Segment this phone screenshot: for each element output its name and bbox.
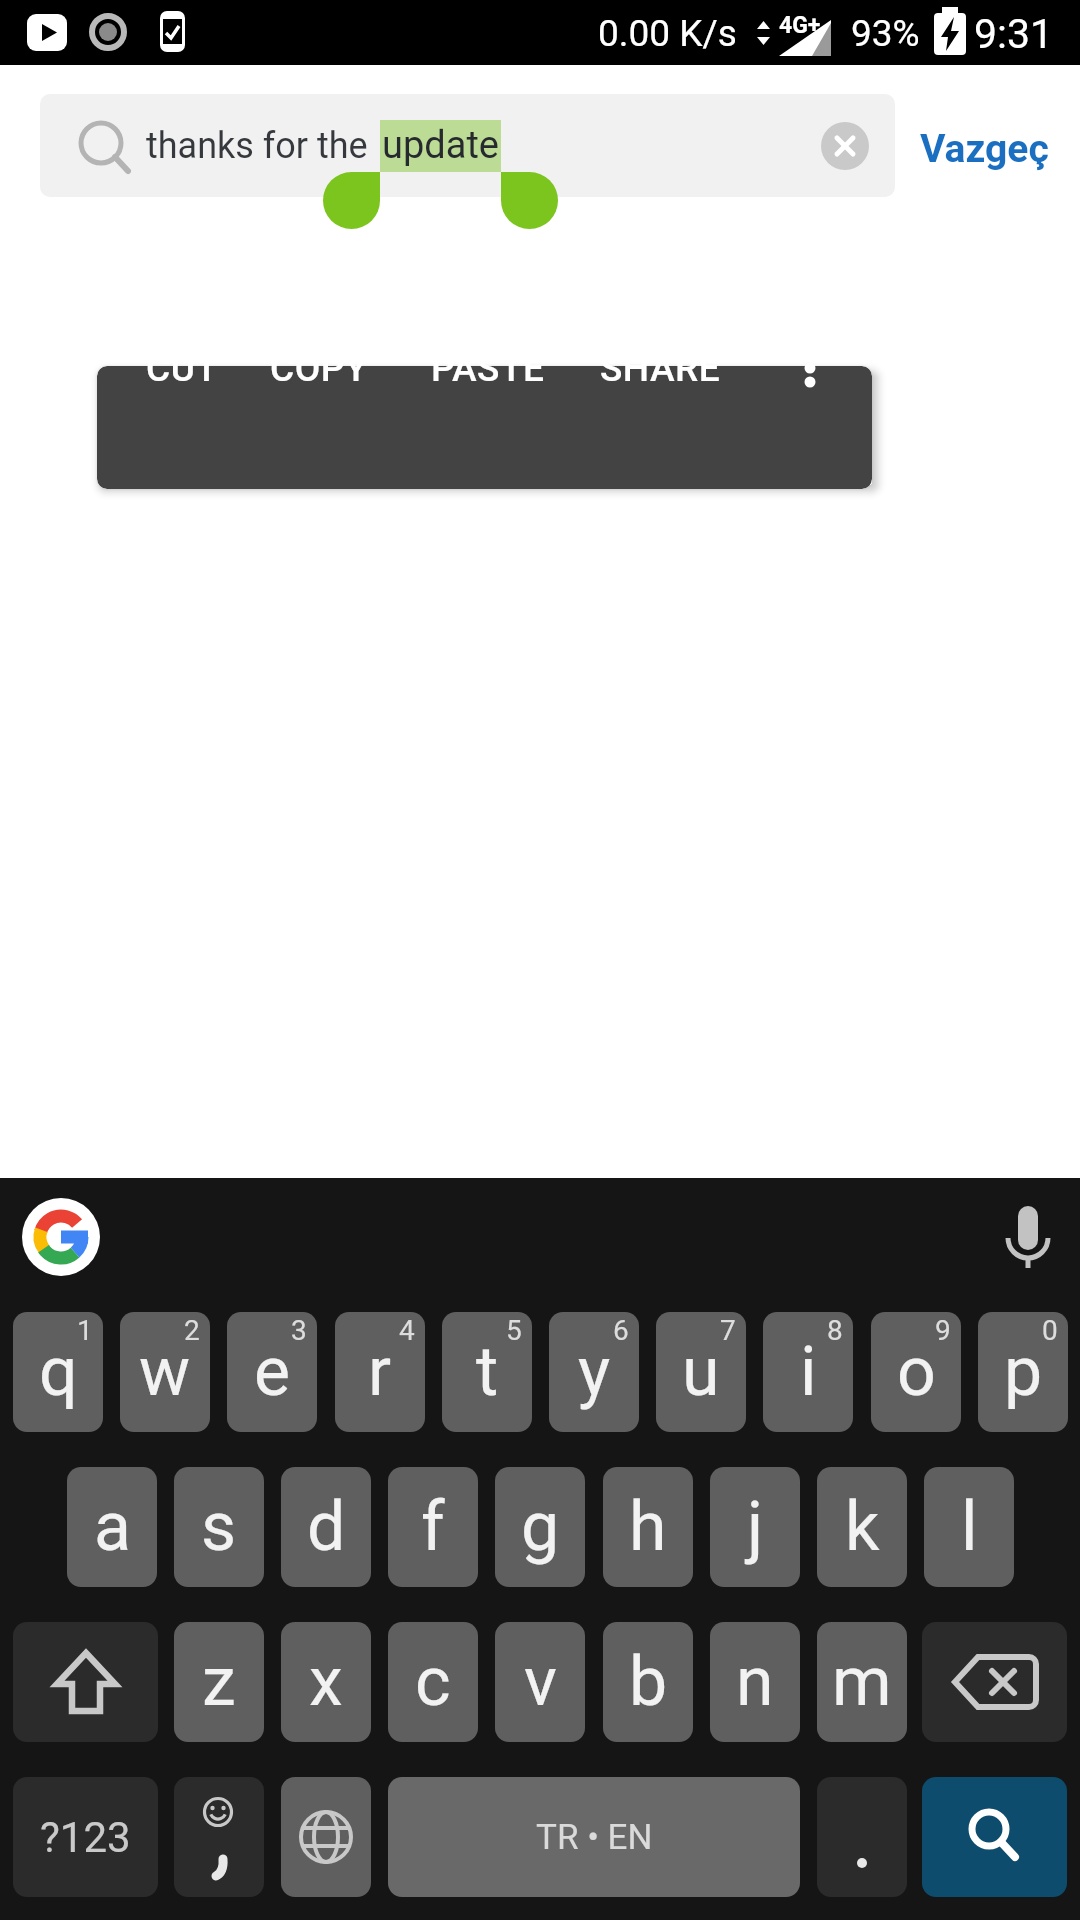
button[interactable]: e xyxy=(227,1312,317,1432)
staticText: 6 xyxy=(613,1314,629,1347)
staticText: thanks for the xyxy=(146,125,368,167)
staticText: v xyxy=(524,1642,557,1722)
button[interactable]: TR • EN xyxy=(388,1777,800,1897)
staticText: p xyxy=(1004,1332,1043,1412)
staticText: e xyxy=(254,1332,291,1412)
staticText: COPY xyxy=(270,347,368,390)
staticText: ?123 xyxy=(40,1813,131,1862)
staticText: y xyxy=(578,1332,611,1412)
staticText: 4 xyxy=(399,1314,415,1347)
staticText: update xyxy=(382,123,499,168)
staticText: g xyxy=(521,1487,560,1567)
staticText: r xyxy=(368,1332,392,1412)
staticText: 0.00 K/s xyxy=(598,12,737,55)
button[interactable] xyxy=(40,94,895,197)
button[interactable] xyxy=(922,1622,1067,1742)
staticText: j xyxy=(747,1487,764,1567)
button[interactable]: l xyxy=(924,1467,1014,1587)
button[interactable]: m xyxy=(817,1622,907,1742)
button[interactable]: x xyxy=(281,1622,371,1742)
button[interactable]: r xyxy=(335,1312,425,1432)
staticText: 8 xyxy=(827,1314,843,1347)
staticText: CUT xyxy=(146,347,219,390)
button[interactable]: j xyxy=(710,1467,800,1587)
button[interactable]: c xyxy=(388,1622,478,1742)
staticText: SHARE xyxy=(600,347,721,390)
button[interactable]: v xyxy=(495,1622,585,1742)
staticText: 7 xyxy=(720,1314,736,1347)
button[interactable]: q xyxy=(13,1312,103,1432)
button[interactable]: n xyxy=(710,1622,800,1742)
button[interactable]: h xyxy=(603,1467,693,1587)
staticText: d xyxy=(307,1487,346,1567)
button[interactable]: SHARE xyxy=(600,347,721,390)
staticText: o xyxy=(897,1332,936,1412)
button[interactable]: z xyxy=(174,1622,264,1742)
button[interactable]: CUT xyxy=(146,347,219,390)
staticText: 5 xyxy=(506,1314,522,1347)
button[interactable]: PASTE xyxy=(431,347,545,390)
staticText: h xyxy=(629,1487,667,1567)
staticText: Vazgeç xyxy=(920,126,1049,172)
staticText: PASTE xyxy=(431,347,545,390)
staticText: b xyxy=(629,1642,668,1722)
button[interactable]: b xyxy=(603,1622,693,1742)
button[interactable]: ?123 xyxy=(13,1777,158,1897)
staticText: s xyxy=(201,1487,237,1567)
staticText: q xyxy=(39,1332,78,1412)
button[interactable] xyxy=(922,1777,1067,1897)
staticText: 0 xyxy=(1042,1314,1058,1347)
staticText: 1 xyxy=(77,1314,93,1347)
button[interactable]: f xyxy=(388,1467,478,1587)
button[interactable] xyxy=(281,1777,371,1897)
staticText: i xyxy=(800,1332,817,1412)
staticText: TR • EN xyxy=(536,1817,653,1858)
button[interactable] xyxy=(174,1777,264,1897)
button[interactable]: a xyxy=(67,1467,157,1587)
staticText: 93% xyxy=(851,12,920,55)
button[interactable]: k xyxy=(817,1467,907,1587)
button[interactable]: g xyxy=(495,1467,585,1587)
button[interactable]: s xyxy=(174,1467,264,1587)
staticText: a xyxy=(94,1487,131,1567)
staticText: u xyxy=(682,1332,720,1412)
staticText: l xyxy=(961,1487,978,1567)
staticText: 3 xyxy=(291,1314,307,1347)
staticText: x xyxy=(309,1642,343,1722)
button[interactable]: y xyxy=(549,1312,639,1432)
staticText: 2 xyxy=(184,1314,200,1347)
staticText: 9 xyxy=(935,1314,951,1347)
button[interactable]: t xyxy=(442,1312,532,1432)
button[interactable]: i xyxy=(763,1312,853,1432)
button[interactable]: d xyxy=(281,1467,371,1587)
staticText: 9:31 xyxy=(974,10,1054,58)
button[interactable] xyxy=(817,1777,907,1897)
staticText: n xyxy=(736,1642,774,1722)
staticText: m xyxy=(832,1642,892,1722)
button[interactable]: p xyxy=(978,1312,1068,1432)
button[interactable]: u xyxy=(656,1312,746,1432)
staticText: c xyxy=(415,1642,451,1722)
button[interactable]: o xyxy=(871,1312,961,1432)
staticText: f xyxy=(421,1487,445,1567)
staticText: k xyxy=(845,1487,880,1567)
staticText: w xyxy=(139,1332,191,1412)
staticText: 4G+ xyxy=(779,12,821,39)
button[interactable]: COPY xyxy=(270,347,368,390)
staticText: z xyxy=(202,1642,236,1722)
staticText: t xyxy=(476,1332,499,1412)
button[interactable] xyxy=(13,1622,158,1742)
button[interactable]: w xyxy=(120,1312,210,1432)
